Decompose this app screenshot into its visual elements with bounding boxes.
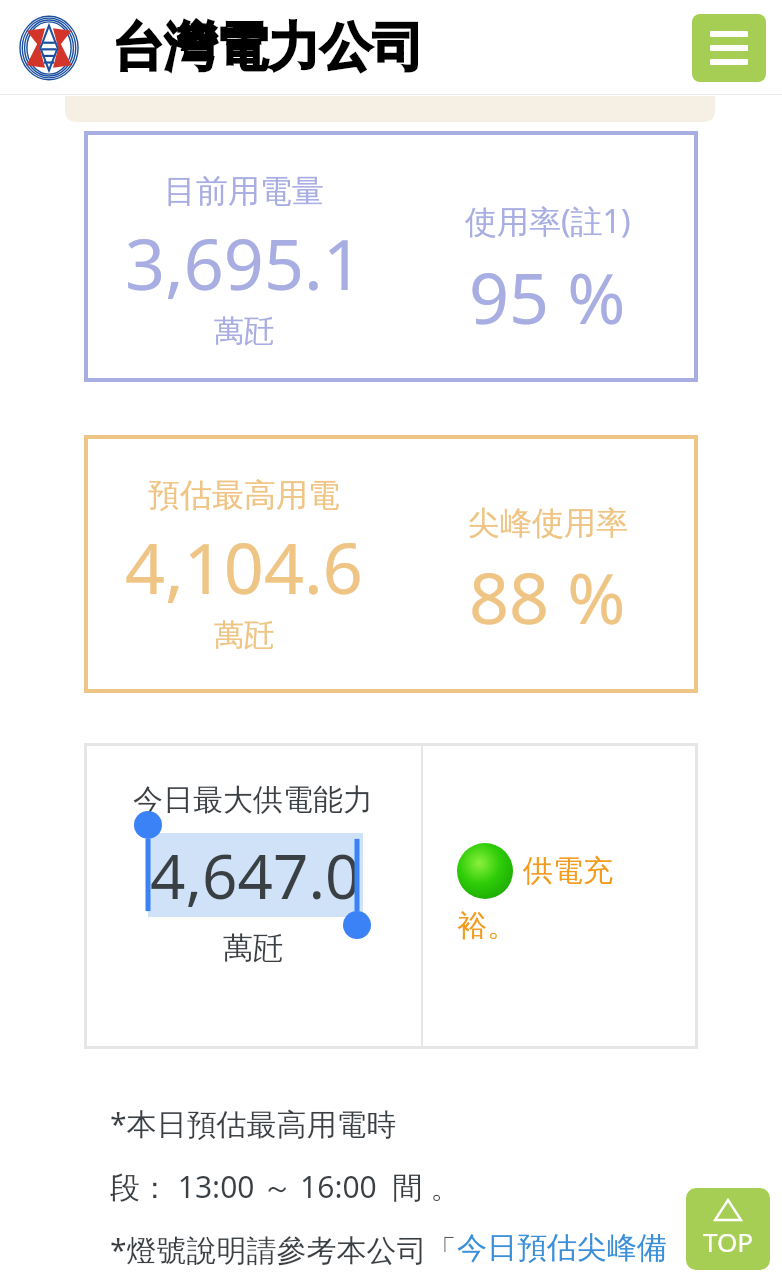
button[interactable]: Menu [692,14,766,82]
staticText: *本日預估最高用電時 [110,1103,397,1144]
staticText: 使用率(註1) [465,199,631,243]
staticText: 今日最大供電能力 [133,781,373,819]
staticText: 萬瓩 [214,616,274,654]
staticText: 預估最高用電 [148,475,340,515]
staticText: 4,104.6 [125,519,363,614]
staticText: 3,695.1 [125,215,363,310]
staticText: *燈號說明請參考本公司「 [110,1229,457,1270]
staticText: 88 % [469,549,626,644]
staticText: 目前用電量 [164,171,324,211]
staticText: 台灣電力公司 [112,15,424,81]
staticText: 段： 13:00 ～ 16:00 間 。 [110,1166,461,1207]
staticText: 裕。 [457,907,517,945]
staticText: 95 % [469,249,626,344]
button[interactable]: 今日預估尖峰備 [457,1229,667,1267]
button[interactable]: 目前用電量 [84,131,698,382]
staticText: TOP [703,1224,753,1259]
staticText: 4,647.0 [150,833,361,917]
staticText: 供電充 [523,852,613,890]
staticText: 萬瓩 [223,929,283,967]
staticText: 尖峰使用率 [468,503,628,543]
button[interactable]: Back to top [686,1188,770,1270]
button[interactable]: 今日最大供電能力 [84,743,698,1049]
staticText: 萬瓩 [214,312,274,350]
button[interactable]: 預估最高用電 [84,435,698,693]
